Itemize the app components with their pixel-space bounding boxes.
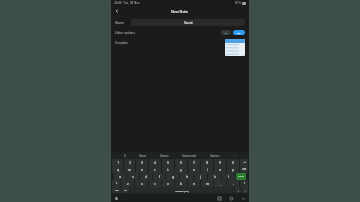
button[interactable]: , xyxy=(214,180,226,187)
button[interactable]: Game xyxy=(138,154,148,158)
button[interactable]: 6 xyxy=(175,159,187,166)
button[interactable]: Alt xyxy=(122,187,129,193)
staticText: k xyxy=(214,175,216,179)
button[interactable]: Off xyxy=(221,30,231,35)
button[interactable]: . xyxy=(227,180,239,187)
button[interactable]: j xyxy=(194,173,207,180)
staticText: Gamemode xyxy=(182,154,197,158)
button[interactable]: k xyxy=(208,173,221,180)
staticText: , xyxy=(220,182,221,186)
button[interactable]: Gamemode xyxy=(181,154,198,158)
button[interactable]: 5 xyxy=(162,159,174,166)
button[interactable]: q xyxy=(112,166,123,173)
button[interactable]: c xyxy=(149,180,161,187)
button[interactable]: ⌫ xyxy=(240,166,248,173)
staticText: f xyxy=(159,175,160,179)
staticText: q xyxy=(117,168,119,172)
staticText: r xyxy=(154,168,156,172)
button[interactable]: w xyxy=(124,166,135,173)
button[interactable]: r xyxy=(149,166,161,173)
button[interactable]: b xyxy=(175,180,187,187)
staticText: a xyxy=(119,175,121,179)
button[interactable]: Template preview xyxy=(225,39,245,56)
button[interactable]: Keyboard switch xyxy=(114,196,119,201)
button[interactable]: z xyxy=(121,180,134,187)
staticText: Games xyxy=(160,154,169,158)
button[interactable]: Games xyxy=(159,154,170,158)
button[interactable]: 9 xyxy=(214,159,226,166)
button[interactable]: t xyxy=(162,166,174,173)
button[interactable]: English (US) xyxy=(130,187,234,193)
button[interactable]: Back xyxy=(113,7,121,15)
button[interactable]: 0 xyxy=(227,159,239,166)
staticText: Name xyxy=(115,21,131,25)
staticText: 0 xyxy=(232,161,234,165)
button[interactable]: p xyxy=(227,166,239,173)
button[interactable]: 2 xyxy=(124,159,135,166)
button[interactable]: ‹ xyxy=(235,187,241,193)
staticText: Editor options xyxy=(115,31,135,35)
staticText: m xyxy=(206,182,209,186)
staticText: o xyxy=(219,168,221,172)
button[interactable]: ⇧ xyxy=(112,180,120,187)
button[interactable]: n xyxy=(188,180,200,187)
staticText: Off xyxy=(224,31,228,34)
staticText: e xyxy=(141,168,143,172)
button[interactable]: Ctrl xyxy=(112,187,121,193)
button[interactable]: Done xyxy=(236,173,246,180)
staticText: Template xyxy=(115,41,129,45)
button[interactable]: m xyxy=(201,180,213,187)
staticText: s xyxy=(132,175,134,179)
button[interactable]: l xyxy=(222,173,235,180)
button[interactable]: On xyxy=(233,30,245,35)
staticText: G xyxy=(124,154,126,158)
staticText: ‹ xyxy=(238,189,239,192)
button[interactable]: › xyxy=(242,187,248,193)
button[interactable]: o xyxy=(214,166,226,173)
staticText: 4 xyxy=(154,161,156,165)
button[interactable]: 1 xyxy=(112,159,123,166)
button[interactable]: ⇥ xyxy=(240,159,248,166)
button[interactable]: h xyxy=(180,173,193,180)
button[interactable]: ⋯ xyxy=(232,154,237,157)
button[interactable]: s xyxy=(127,173,139,180)
button[interactable]: Recents xyxy=(216,195,222,201)
staticText: v xyxy=(167,182,169,186)
staticText: ⋯ xyxy=(233,154,236,157)
button[interactable]: g xyxy=(166,173,179,180)
button[interactable]: Home xyxy=(228,195,234,201)
button[interactable]: i xyxy=(201,166,213,173)
button[interactable]: v xyxy=(162,180,174,187)
button[interactable]: Back xyxy=(240,195,246,201)
staticText: Ctrl xyxy=(115,189,119,192)
staticText: u xyxy=(193,168,195,172)
button[interactable]: 8 xyxy=(201,159,213,166)
staticText: ⇧ xyxy=(243,182,246,185)
staticText: ⇧ xyxy=(115,182,118,185)
staticText: i xyxy=(207,168,208,172)
button[interactable]: 3 xyxy=(136,159,148,166)
staticText: 5 xyxy=(167,161,169,165)
staticText: . xyxy=(233,182,234,186)
staticText: l xyxy=(228,175,229,179)
button[interactable]: Guest xyxy=(131,19,245,26)
button[interactable]: u xyxy=(188,166,200,173)
staticText: ⌫ xyxy=(242,168,246,171)
button[interactable]: d xyxy=(140,173,152,180)
staticText: 6 xyxy=(180,161,182,165)
button[interactable]: x xyxy=(135,180,148,187)
button[interactable]: e xyxy=(136,166,148,173)
button[interactable]: ⇧ xyxy=(240,180,248,187)
button[interactable]: a xyxy=(114,173,126,180)
button[interactable]: 4 xyxy=(149,159,161,166)
staticText: g xyxy=(172,175,174,179)
staticText: 9 xyxy=(219,161,221,165)
staticText: Game xyxy=(139,154,147,158)
button[interactable]: G xyxy=(123,154,127,158)
staticText: 7 xyxy=(193,161,195,165)
button[interactable]: f xyxy=(153,173,165,180)
button[interactable]: Gamers xyxy=(209,154,221,158)
button[interactable]: 7 xyxy=(188,159,200,166)
staticText: y xyxy=(180,168,182,172)
button[interactable]: y xyxy=(175,166,187,173)
